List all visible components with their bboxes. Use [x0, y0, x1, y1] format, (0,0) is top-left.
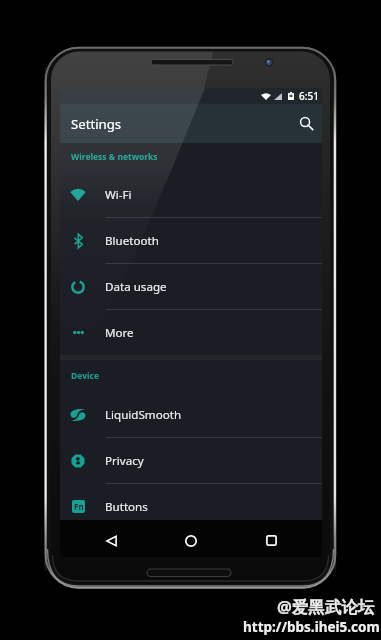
button[interactable]: Bluetooth	[60, 218, 322, 263]
button[interactable]: More	[60, 310, 322, 355]
button[interactable]: Recents	[231, 520, 311, 557]
button[interactable]: Fn	[60, 484, 322, 529]
staticText: Wireless & networks	[71, 151, 158, 163]
staticText: LiquidSmooth	[105, 407, 182, 423]
button[interactable]: LiquidSmooth	[60, 392, 322, 437]
button[interactable]: Privacy	[60, 438, 322, 483]
staticText: Fn	[74, 501, 84, 512]
button[interactable]: Home	[151, 520, 231, 557]
staticText: More	[105, 325, 134, 341]
staticText: 6:51	[299, 89, 319, 103]
staticText: Privacy	[105, 453, 144, 469]
staticText: Bluetooth	[105, 233, 159, 249]
button[interactable]: Wi-Fi	[60, 172, 322, 217]
staticText: Settings	[71, 115, 122, 133]
button[interactable]: Settings	[60, 104, 322, 143]
staticText: Buttons	[105, 499, 148, 515]
button[interactable]: Data usage	[60, 264, 322, 309]
staticText: Data usage	[105, 279, 167, 295]
staticText: Device	[71, 370, 99, 382]
staticText: Wi-Fi	[105, 187, 132, 203]
staticText: http://bbs.ihei5.com	[243, 618, 380, 636]
button[interactable]: Back	[71, 520, 151, 557]
staticText: @爱黑武论坛	[277, 595, 375, 618]
button[interactable]: Search	[284, 105, 322, 143]
